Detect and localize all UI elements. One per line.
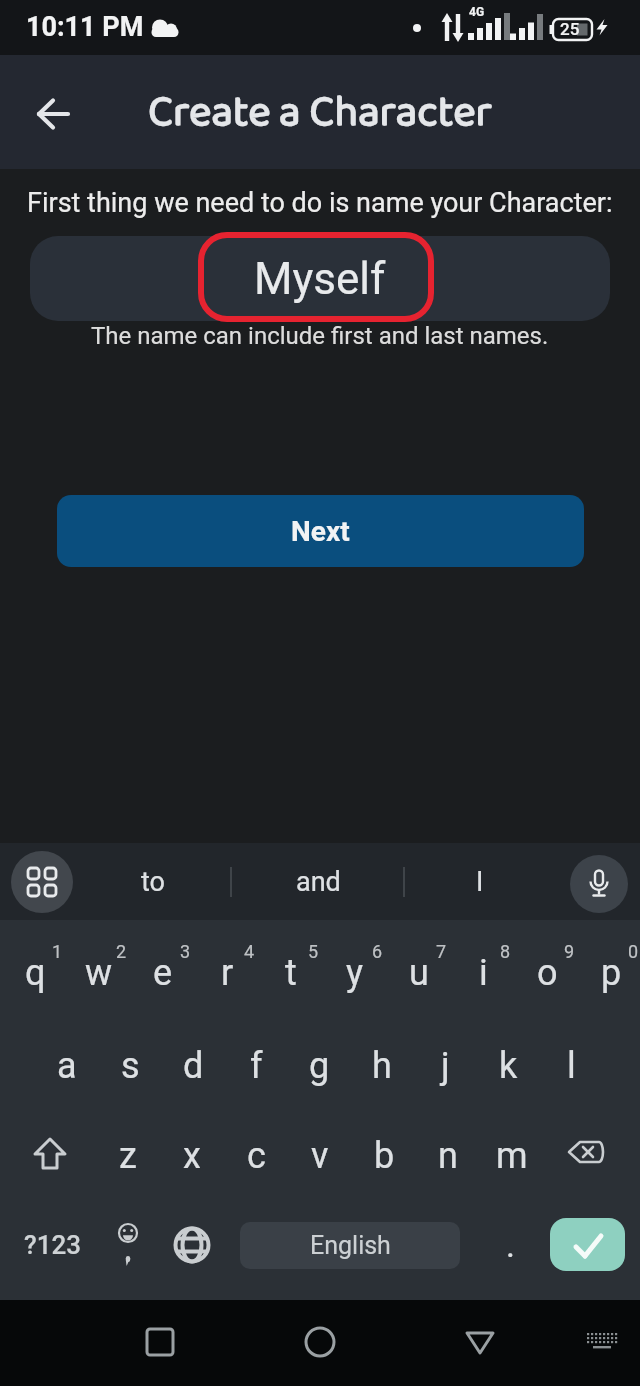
button[interactable]: i [451, 930, 515, 1016]
staticText: c [247, 1135, 266, 1177]
button[interactable]: Next [57, 495, 584, 567]
staticText: Create a Character [148, 79, 492, 148]
button[interactable]: h [351, 1023, 413, 1109]
staticText: Next [291, 515, 350, 548]
staticText: s [121, 1045, 140, 1087]
staticText: 25 [560, 19, 580, 39]
staticText: English [310, 1231, 391, 1260]
button[interactable]: z [96, 1113, 160, 1199]
staticText: a [57, 1045, 77, 1087]
button[interactable] [550, 1218, 625, 1271]
staticText: 1 [52, 941, 63, 962]
staticText: . [506, 1225, 515, 1265]
button[interactable]: to [93, 851, 213, 913]
button[interactable]: ?123 [14, 1210, 90, 1280]
staticText: First thing we need to do is name your C… [27, 187, 613, 219]
button[interactable] [23, 84, 83, 144]
staticText: Myself [254, 253, 386, 305]
button[interactable]: m [480, 1113, 544, 1199]
button[interactable]: n [416, 1113, 480, 1199]
staticText: to [141, 866, 165, 898]
staticText: u [409, 952, 429, 994]
staticText: n [438, 1135, 458, 1177]
staticText: t [285, 952, 297, 994]
button[interactable] [98, 1210, 158, 1280]
button[interactable]: . [480, 1210, 540, 1280]
staticText: ?123 [24, 1230, 81, 1260]
button[interactable]: and [258, 851, 378, 913]
staticText: p [601, 952, 622, 994]
staticText: 9 [564, 941, 575, 962]
button[interactable]: q [3, 930, 67, 1016]
button[interactable]: v [288, 1113, 352, 1199]
button[interactable] [18, 1120, 82, 1190]
staticText: y [346, 952, 364, 994]
button[interactable] [554, 1120, 618, 1190]
staticText: h [372, 1045, 392, 1087]
button[interactable]: r [195, 930, 259, 1016]
button[interactable]: s [99, 1023, 161, 1109]
staticText: 8 [500, 941, 511, 962]
staticText: and [296, 866, 341, 898]
staticText: 5 [308, 941, 319, 962]
button[interactable]: o [515, 930, 579, 1016]
staticText: w [85, 952, 113, 994]
button[interactable] [120, 1302, 200, 1382]
staticText: 6 [372, 941, 383, 962]
button[interactable]: a [36, 1023, 98, 1109]
button[interactable]: w [67, 930, 131, 1016]
staticText: 4G [469, 5, 485, 19]
staticText: 0 [628, 941, 639, 962]
button[interactable]: l [540, 1023, 602, 1109]
button[interactable]: u [387, 930, 451, 1016]
staticText: The name can include first and last name… [91, 322, 549, 350]
button[interactable]: I [420, 851, 540, 913]
button[interactable]: p [579, 930, 640, 1016]
button[interactable] [162, 1210, 222, 1280]
button[interactable] [570, 1310, 634, 1374]
button[interactable]: g [288, 1023, 350, 1109]
staticText: i [479, 952, 488, 994]
staticText: I [476, 866, 484, 898]
staticText: 4 [244, 941, 255, 962]
staticText: z [119, 1135, 137, 1177]
button[interactable]: y [323, 930, 387, 1016]
button[interactable]: e [131, 930, 195, 1016]
button[interactable]: t [259, 930, 323, 1016]
staticText: v [311, 1135, 329, 1177]
staticText: o [537, 952, 558, 994]
staticText: 3 [180, 941, 191, 962]
button[interactable]: b [352, 1113, 416, 1199]
button[interactable]: f [225, 1023, 287, 1109]
staticText: b [374, 1135, 395, 1177]
staticText: 2 [116, 941, 127, 962]
staticText: k [499, 1045, 518, 1087]
staticText: 10:11 PM [26, 11, 144, 43]
staticText: r [221, 952, 234, 994]
button[interactable]: k [477, 1023, 539, 1109]
button[interactable]: c [224, 1113, 288, 1199]
button[interactable] [11, 851, 73, 913]
staticText: e [153, 952, 173, 994]
button[interactable]: x [160, 1113, 224, 1199]
button[interactable]: d [162, 1023, 224, 1109]
staticText: q [25, 952, 46, 994]
staticText: f [250, 1045, 263, 1087]
staticText: d [183, 1045, 204, 1087]
button[interactable] [440, 1302, 520, 1382]
button[interactable] [570, 855, 628, 913]
button[interactable] [280, 1302, 360, 1382]
staticText: g [309, 1045, 330, 1087]
button[interactable]: Myself [30, 236, 610, 321]
staticText: m [496, 1135, 528, 1177]
staticText: 7 [436, 941, 447, 962]
staticText: x [183, 1135, 201, 1177]
staticText: j [441, 1045, 450, 1087]
button[interactable]: English [240, 1222, 460, 1269]
button[interactable]: j [414, 1023, 476, 1109]
staticText: l [567, 1045, 576, 1087]
